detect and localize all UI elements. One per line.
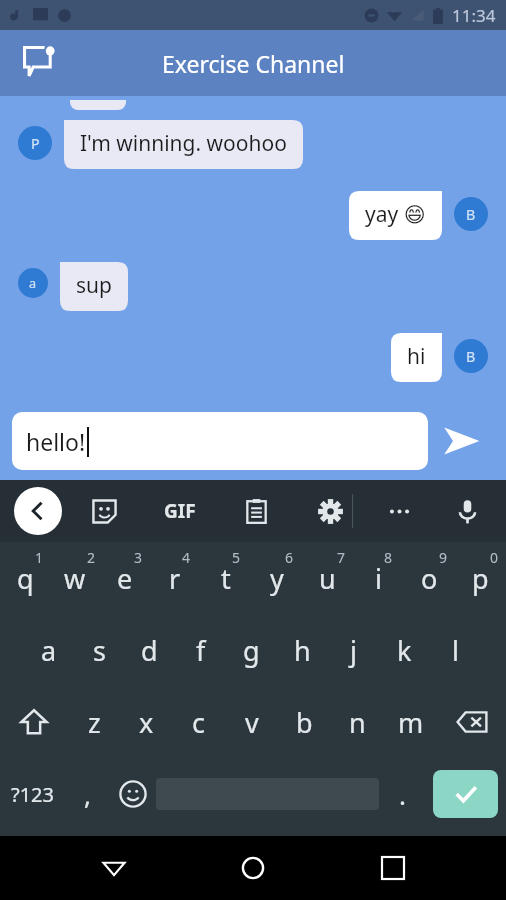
button[interactable]: q [0, 542, 50, 614]
button[interactable]: u [302, 542, 353, 614]
button[interactable]: Send [428, 412, 494, 470]
staticText: i [375, 560, 382, 597]
button[interactable]: Backspace [437, 686, 506, 758]
staticText: B [466, 205, 476, 224]
staticText: y [270, 560, 284, 597]
button[interactable]: B [454, 197, 488, 231]
button[interactable]: Settings [308, 489, 352, 533]
button[interactable]: x [120, 686, 172, 758]
staticText: k [397, 632, 412, 669]
button[interactable]: s [74, 614, 124, 686]
staticText: r [169, 560, 181, 597]
staticText: t [221, 560, 231, 597]
button[interactable]: Enter [433, 770, 498, 818]
button[interactable]: m [384, 686, 437, 758]
button[interactable]: g [226, 614, 277, 686]
staticText: 1 [35, 548, 44, 567]
button[interactable]: Recents [367, 842, 419, 894]
staticText: e [117, 560, 133, 597]
staticText: B [466, 347, 476, 366]
staticText: ?123 [11, 781, 54, 808]
button[interactable]: hello! [12, 412, 428, 470]
staticText: b [296, 704, 313, 741]
staticText: a [41, 632, 57, 669]
staticText: w [64, 560, 86, 597]
staticText: a [29, 275, 37, 292]
button[interactable]: o [404, 542, 455, 614]
button[interactable]: l [430, 614, 481, 686]
staticText: z [88, 704, 101, 741]
staticText: 3 [134, 548, 143, 567]
button[interactable]: Voice input [445, 489, 489, 533]
staticText: g [243, 632, 260, 669]
staticText: u [319, 560, 336, 597]
staticText: Exercise Channel [162, 48, 345, 79]
button[interactable]: Back [14, 487, 62, 535]
button[interactable]: a [18, 268, 48, 298]
staticText: 2 [87, 548, 96, 567]
button[interactable]: P [18, 126, 52, 160]
button[interactable]: . [379, 758, 425, 830]
button[interactable]: sup [60, 262, 128, 311]
button[interactable]: e [100, 542, 150, 614]
staticText: 6 [285, 548, 294, 567]
button[interactable]: ?123 [0, 758, 65, 830]
button[interactable]: More options [377, 489, 421, 533]
button[interactable]: , [65, 758, 110, 830]
staticText: c [192, 704, 205, 741]
button[interactable]: Back [88, 842, 140, 894]
staticText: p [472, 560, 489, 597]
button[interactable]: k [379, 614, 430, 686]
staticText: d [141, 632, 158, 669]
button[interactable]: GIF [156, 487, 204, 535]
button[interactable]: d [124, 614, 175, 686]
button[interactable]: z [68, 686, 120, 758]
staticText: I'm winning. woohoo [80, 129, 287, 158]
staticText: h [294, 632, 311, 669]
staticText: l [452, 632, 459, 669]
button[interactable]: Stickers [82, 489, 126, 533]
button[interactable]: w [50, 542, 100, 614]
staticText: q [17, 560, 34, 597]
button[interactable]: n [331, 686, 384, 758]
button[interactable]: r [150, 542, 200, 614]
button[interactable]: Clipboard [234, 489, 278, 533]
button[interactable]: j [328, 614, 379, 686]
staticText: P [31, 134, 40, 153]
button[interactable]: f [175, 614, 226, 686]
button[interactable]: y [251, 542, 302, 614]
button[interactable]: v [225, 686, 278, 758]
staticText: hi [407, 342, 426, 371]
button[interactable]: b [278, 686, 331, 758]
button[interactable]: I'm winning. woohoo [64, 120, 303, 169]
button[interactable]: Home [227, 842, 279, 894]
staticText: sup [76, 271, 112, 300]
button[interactable]: Emoji [110, 758, 156, 830]
button[interactable]: B [454, 339, 488, 373]
staticText: f [196, 632, 206, 669]
button[interactable]: Shift [0, 686, 68, 758]
staticText: GIF [164, 498, 196, 524]
staticText: yay 😄 [365, 200, 426, 229]
staticText: 9 [439, 548, 448, 567]
staticText: hello! [26, 426, 86, 457]
button[interactable]: Channels [18, 41, 62, 85]
button[interactable]: hi [391, 333, 442, 382]
button[interactable]: yay 😄 [349, 191, 442, 240]
button[interactable]: h [277, 614, 328, 686]
staticText: . [399, 777, 406, 812]
staticText: x [139, 704, 154, 741]
staticText: 8 [384, 548, 393, 567]
staticText: 4 [182, 548, 191, 567]
staticText: 11:34 [452, 4, 496, 27]
button[interactable]: i [353, 542, 404, 614]
button[interactable]: p [455, 542, 506, 614]
staticText: j [350, 632, 357, 669]
staticText: 0 [490, 548, 499, 567]
staticText: m [398, 704, 424, 741]
button[interactable]: a [24, 614, 74, 686]
button[interactable]: c [172, 686, 225, 758]
staticText: v [245, 704, 259, 741]
button[interactable]: t [200, 542, 251, 614]
